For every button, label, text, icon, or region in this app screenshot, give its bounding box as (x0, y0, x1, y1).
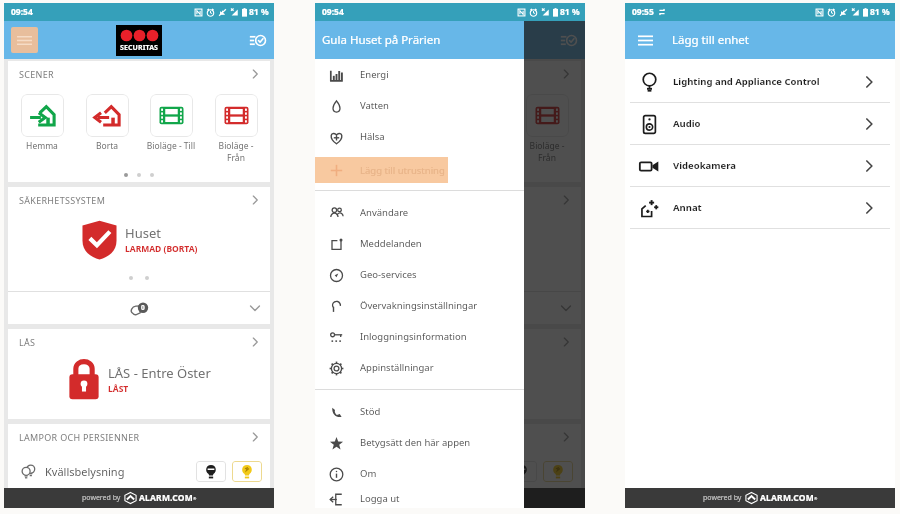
button[interactable]: LÅS (319, 329, 581, 355)
staticText: 81 % (870, 6, 890, 18)
button[interactable]: Borta (387, 94, 449, 152)
staticText: ® (193, 496, 197, 501)
button[interactable]: Bioläge - (205, 94, 267, 164)
button[interactable]: Audio (625, 103, 895, 144)
button[interactable]: LÅS - Entre Öster (8, 357, 270, 402)
staticText: Energi (360, 68, 389, 81)
button[interactable]: Kvällsbelysning (8, 455, 270, 487)
staticText: LARMAD (BORTA) (125, 243, 198, 255)
button[interactable]: Huset (8, 218, 270, 261)
staticText: powered by (393, 493, 434, 503)
staticText: LÅS (330, 336, 347, 348)
staticText: Lighting and Appliance Control (673, 75, 820, 88)
staticText: SCENER (330, 68, 365, 80)
button[interactable]: Turn light off (196, 461, 226, 482)
button[interactable]: Borta (76, 94, 138, 152)
staticText: 81 % (249, 6, 269, 18)
button[interactable]: SCENER (8, 61, 270, 87)
staticText: 09:55 (632, 6, 654, 18)
staticText: Meddelanden (360, 237, 422, 250)
button[interactable]: Vatten (315, 90, 524, 121)
button[interactable]: Turn light on (543, 461, 573, 482)
staticText: Från (516, 152, 578, 164)
staticText: Hemma (11, 140, 73, 152)
staticText: SÄKERHETSSYSTEM (19, 194, 106, 206)
button[interactable]: Tasks (245, 28, 269, 52)
button[interactable]: Stöd (315, 396, 524, 427)
staticText: Vatten (360, 99, 389, 112)
staticText: Huset (125, 224, 161, 242)
button[interactable]: Menu (11, 27, 38, 53)
button[interactable]: Användare (315, 197, 524, 228)
staticText: LAMPOR OCH PERSIENNER (19, 431, 140, 443)
staticText: Om (360, 467, 377, 480)
staticText: Lägg till enhet (672, 32, 749, 48)
button[interactable]: 0 (8, 292, 270, 324)
button[interactable]: LÅS - Entre Öster (319, 357, 581, 402)
staticText: LÅS - Entre Öster (108, 364, 211, 382)
button[interactable]: Kvällsbelysning (319, 455, 581, 487)
staticText: Logga ut (360, 492, 400, 505)
staticText: ALARM.COM (760, 492, 814, 504)
button[interactable]: Huset (319, 218, 581, 261)
button[interactable]: SÄKERHETSSYSTEM (8, 187, 270, 213)
button[interactable]: SCENER (319, 61, 581, 87)
button[interactable]: SÄKERHETSSYSTEM (319, 187, 581, 213)
button[interactable]: Hemma (322, 94, 384, 152)
button[interactable]: Menu (635, 30, 655, 50)
button[interactable]: 0 (319, 292, 581, 324)
button[interactable]: Övervakningsinställningar (315, 290, 524, 321)
staticText: 81 % (560, 6, 580, 18)
staticText: Geo-services (360, 268, 417, 281)
staticText: Lägg till utrustning (360, 164, 445, 177)
staticText: Videokamera (673, 159, 736, 172)
staticText: Hälsa (360, 130, 385, 143)
staticText: LÅST (419, 383, 440, 395)
button[interactable]: Videokamera (625, 145, 895, 186)
staticText: Kvällsbelysning (356, 464, 436, 479)
staticText: powered by (82, 493, 123, 503)
staticText: Inloggningsinformation (360, 330, 467, 343)
button[interactable]: LAMPOR OCH PERSIENNER (8, 424, 270, 450)
staticText: powered by (703, 493, 744, 503)
staticText: Bioläge - (205, 140, 267, 152)
staticText: 09:54 (322, 6, 344, 18)
staticText: Bioläge - Till (140, 140, 202, 152)
button[interactable]: Lighting and Appliance Control (625, 61, 895, 102)
staticText: Annat (673, 201, 702, 214)
button[interactable]: Energi (315, 59, 524, 90)
button[interactable]: Lägg till utrustning (315, 157, 448, 183)
button[interactable]: Hälsa (315, 121, 524, 152)
button[interactable]: Bioläge - (516, 94, 578, 164)
button[interactable]: Inloggningsinformation (315, 321, 524, 352)
button[interactable]: Logga ut (315, 489, 524, 508)
button[interactable]: Appinställningar (315, 352, 524, 383)
staticText: LÅST (108, 383, 129, 395)
button[interactable]: LAMPOR OCH PERSIENNER (319, 424, 581, 450)
staticText: LÅS - Entre Öster (419, 364, 522, 382)
staticText: Användare (360, 206, 409, 219)
staticText: ® (814, 496, 818, 501)
staticText: Från (205, 152, 267, 164)
button[interactable]: Turn light off (507, 461, 537, 482)
button[interactable]: Annat (625, 187, 895, 228)
button[interactable]: Geo-services (315, 259, 524, 290)
button[interactable]: Meddelanden (315, 228, 524, 259)
staticText: ALARM.COM (139, 492, 193, 504)
staticText: Gula Huset på Prärien (322, 32, 441, 48)
button[interactable]: LÅS (8, 329, 270, 355)
button[interactable]: Turn light on (232, 461, 262, 482)
staticText: Betygsätt den här appen (360, 436, 471, 449)
button[interactable]: Hemma (11, 94, 73, 152)
staticText: SECURITAS (120, 43, 159, 53)
button[interactable]: Betygsätt den här appen (315, 427, 524, 458)
staticText: 0 (452, 303, 456, 312)
staticText: Bioläge - (516, 140, 578, 152)
staticText: Appinställningar (360, 361, 434, 374)
button[interactable]: Bioläge - Till (140, 94, 202, 152)
button[interactable]: Om (315, 458, 524, 489)
